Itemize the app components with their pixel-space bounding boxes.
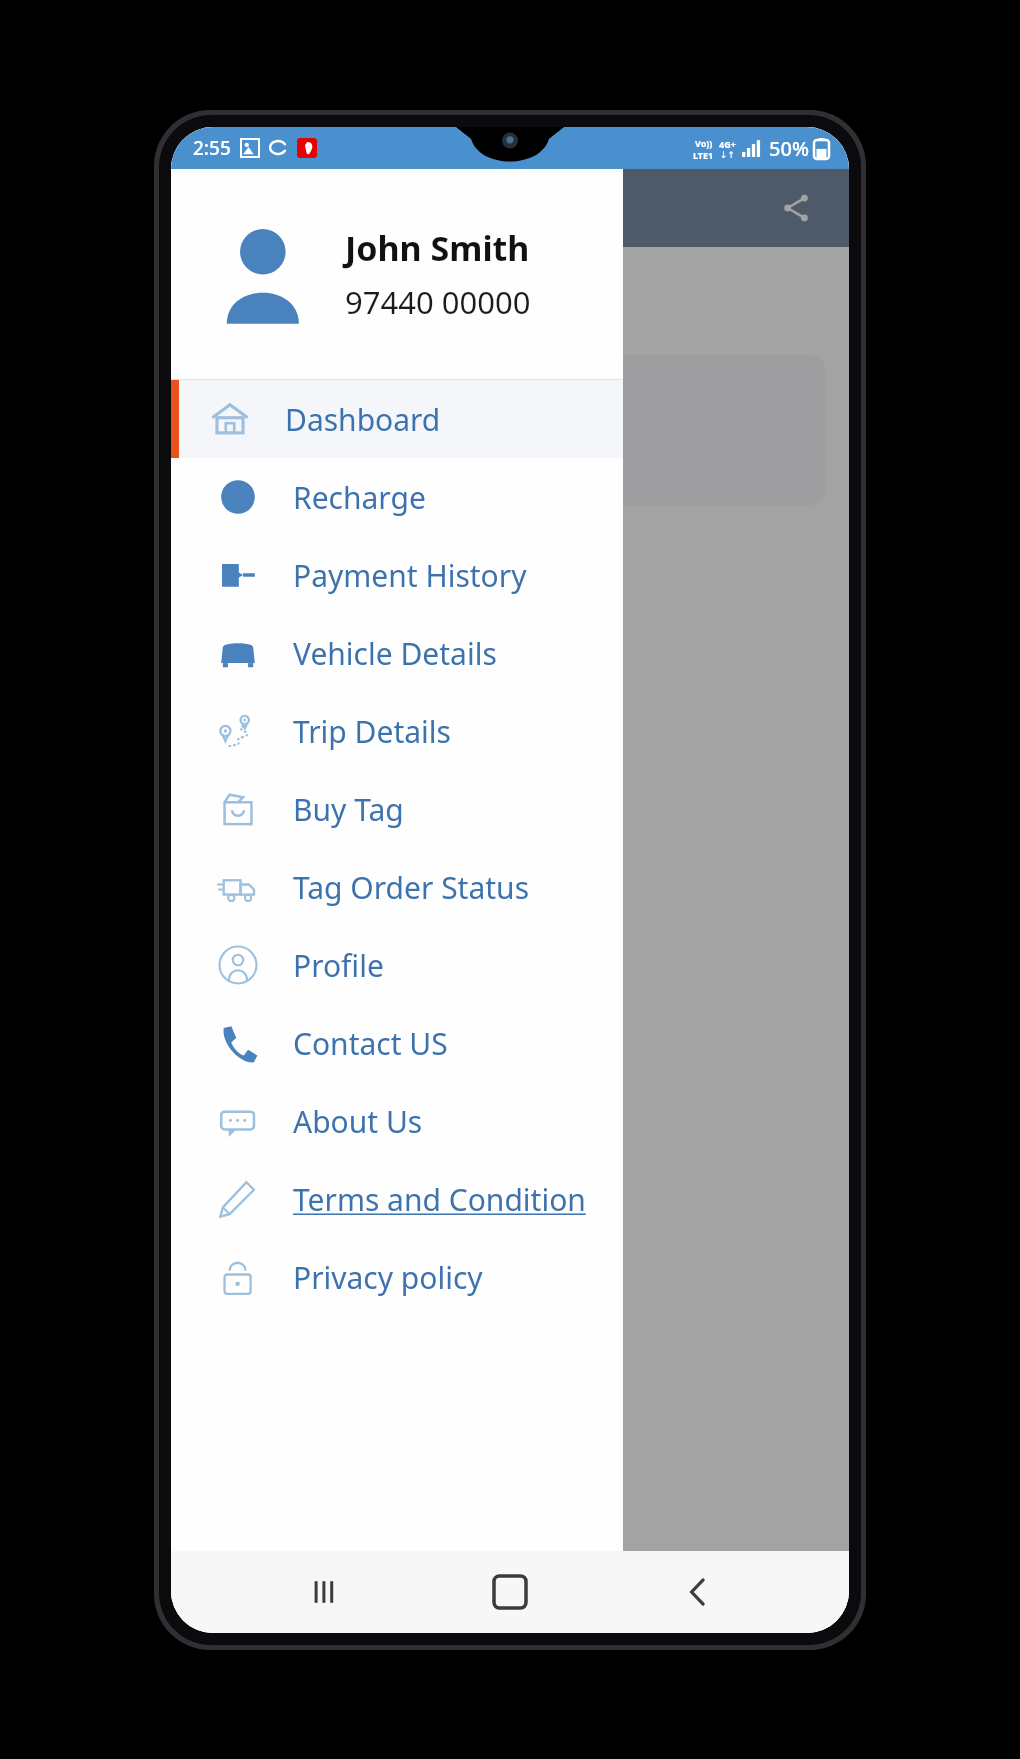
button[interactable]: About Us — [171, 1082, 623, 1160]
staticText: 50% — [769, 135, 809, 162]
staticText: LTE1 — [693, 149, 714, 161]
staticText: 97440 00000 — [345, 281, 531, 323]
staticText: TN 01 HP — [195, 277, 346, 323]
staticText: Recharge — [293, 477, 426, 518]
staticText: Trip Details — [439, 633, 582, 670]
staticText: Vo)) — [695, 137, 713, 149]
button[interactable]: John Smith — [171, 169, 623, 379]
button[interactable]: Payment History — [195, 891, 825, 1016]
button[interactable]: Share — [773, 185, 819, 231]
staticText: Terms and Condition — [293, 1179, 586, 1220]
button[interactable]: Recharge — [171, 458, 623, 536]
staticText: Privacy policy — [293, 1257, 483, 1298]
button[interactable]: Profile — [171, 926, 623, 1004]
button[interactable]: Back — [662, 1556, 734, 1628]
button[interactable]: Buy Tag — [171, 770, 623, 848]
staticText: Tag Order Status — [293, 867, 530, 908]
staticText: Buy Tag — [293, 789, 404, 830]
staticText: Vehicle Details — [293, 633, 497, 674]
button[interactable]: Privacy policy — [171, 1238, 623, 1316]
staticText: Profile — [293, 945, 384, 986]
button[interactable]: Vehicle Details — [195, 718, 825, 843]
staticText: 2:55 — [193, 135, 231, 161]
staticText: Dashboard — [285, 399, 441, 440]
staticText: Trip Details — [293, 711, 451, 752]
button[interactable]: Dashboard — [171, 380, 623, 458]
staticText: Active Tags — [437, 381, 583, 419]
staticText: 4G+ — [719, 138, 736, 150]
button[interactable]: Contact US — [171, 1004, 623, 1082]
button[interactable]: Vehicle Details — [171, 614, 623, 692]
button[interactable]: Payment History — [171, 536, 623, 614]
button[interactable]: Recent apps — [287, 1556, 359, 1628]
button[interactable]: Trip Details — [171, 692, 623, 770]
staticText: Payment History — [293, 555, 527, 596]
staticText: ↓↑ — [720, 150, 736, 160]
button[interactable]: Tag Order Status — [171, 848, 623, 926]
staticText: Contact US — [293, 1023, 448, 1064]
button[interactable]: Home — [474, 1556, 546, 1628]
button[interactable]: Trip Details — [195, 545, 825, 670]
staticText: About Us — [293, 1101, 423, 1142]
staticText: 1/1 — [480, 427, 540, 479]
button[interactable]: Terms and Condition — [171, 1160, 623, 1238]
staticText: John Smith — [345, 225, 530, 271]
